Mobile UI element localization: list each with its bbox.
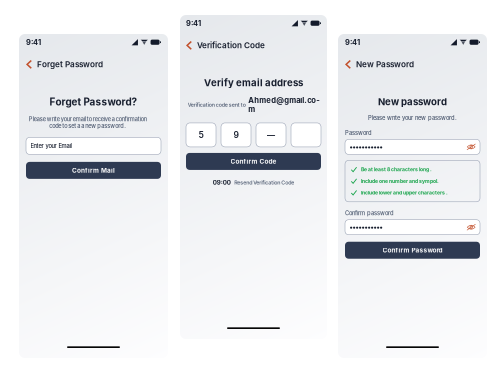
staticText: Be at least 8 characters long .: [361, 166, 432, 172]
staticText: 5: [198, 130, 203, 140]
staticText: Confirm password: [345, 210, 394, 217]
button[interactable]: Verification Code: [186, 41, 321, 50]
button[interactable]: Toggle password visibility: [467, 144, 475, 150]
staticText: Verification code sent to: [188, 101, 246, 108]
button[interactable]: Enter your Email: [26, 137, 161, 154]
staticText: •••••••••••: [349, 143, 382, 151]
button[interactable]: Forget Password: [26, 60, 161, 69]
staticText: 09:00: [213, 179, 231, 186]
button[interactable]: Confirm Password: [345, 242, 480, 259]
button[interactable]: 9: [221, 123, 251, 147]
staticText: Verification Code: [197, 40, 265, 50]
staticText: Include lower and upper characters .: [361, 190, 448, 196]
staticText: New password: [378, 96, 447, 107]
staticText: Confirm Code: [230, 157, 276, 165]
button[interactable]: New Password: [345, 60, 480, 69]
button[interactable]: Confirm Code: [186, 153, 321, 170]
staticText: Forget Password?: [49, 96, 137, 108]
button[interactable]: 5: [186, 123, 216, 147]
button[interactable]: Toggle password visibility: [467, 224, 475, 230]
staticText: 9:41: [186, 19, 201, 28]
button[interactable]: Resend Verification Code: [234, 179, 294, 186]
staticText: Please write your new password.: [368, 114, 457, 121]
button[interactable]: Confirm Mail: [26, 162, 161, 179]
staticText: Ahmed@gmail.com: [248, 95, 319, 114]
staticText: Please write your email to receive a con…: [28, 116, 146, 129]
staticText: Confirm Password: [382, 246, 442, 254]
staticText: Verify email address: [204, 77, 303, 88]
staticText: •••••••••••: [349, 223, 382, 231]
staticText: 9:41: [345, 38, 360, 47]
staticText: Resend Verification Code: [234, 179, 294, 186]
staticText: Enter your Email: [30, 142, 71, 149]
staticText: 9:41: [26, 38, 41, 47]
staticText: Confirm Mail: [72, 166, 115, 174]
staticText: 9: [233, 130, 238, 140]
staticText: Include one number and sympol.: [361, 178, 439, 184]
staticText: Password: [345, 129, 372, 136]
button[interactable]: [291, 123, 321, 147]
staticText: Forget Password: [37, 59, 103, 69]
staticText: New Password: [356, 59, 414, 69]
staticText: —: [266, 130, 275, 140]
button[interactable]: —: [256, 123, 286, 147]
